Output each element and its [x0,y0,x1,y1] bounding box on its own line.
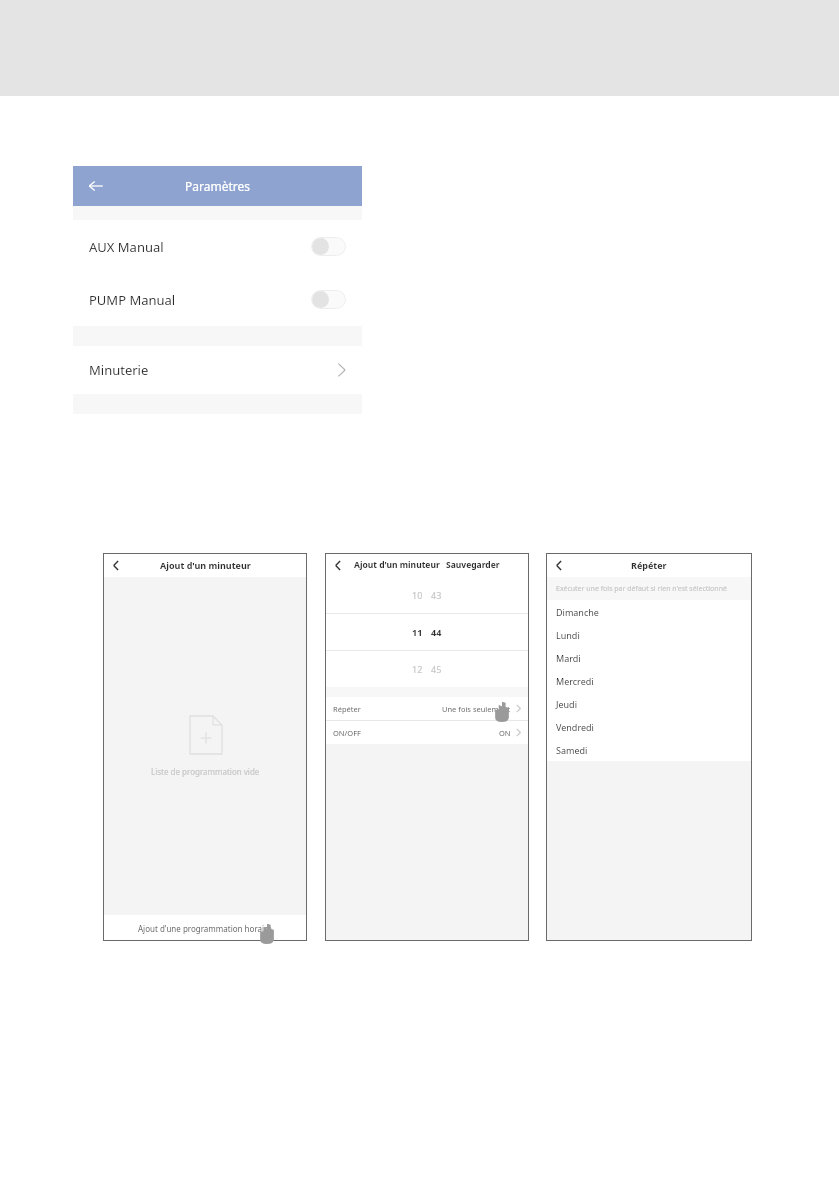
staticText: Une fois seulement [442,704,511,714]
staticText: Jeudi [556,698,577,710]
button[interactable]: Ajout d'une programmation horaire [103,915,307,941]
button[interactable]: Back [83,173,109,199]
staticText: 11 [412,626,423,638]
staticText: Paramètres [185,178,250,194]
staticText: Samedi [556,744,588,756]
staticText: Mardi [556,652,581,664]
staticText: ON/OFF [333,728,361,738]
button[interactable]: Vendredi [546,715,752,738]
staticText: 12 [412,663,423,675]
staticText: 43 [431,589,442,601]
staticText: Répéter [333,704,361,714]
staticText: Lundi [556,629,580,641]
staticText: Liste de programmation vide [151,766,260,777]
button[interactable]: ON/OFF [325,721,529,744]
button[interactable]: Minuterie [73,346,362,394]
staticText: Exécuter une fois par défaut si rien n'e… [556,584,727,594]
button[interactable]: Sauvegarder [446,559,500,571]
staticText: Ajout d'un minuteur [160,559,251,571]
staticText: Minuterie [89,361,149,379]
staticText: Mercredi [556,675,594,687]
staticText: Sauvegarder [446,559,500,571]
button[interactable]: AUX Manual [73,220,362,273]
staticText: Dimanche [556,606,599,618]
staticText: PUMP Manual [89,291,176,309]
button[interactable]: Dimanche [546,600,752,623]
staticText: Vendredi [556,721,594,733]
button[interactable]: Mercredi [546,669,752,692]
button[interactable]: PUMP Manual [311,290,346,309]
button[interactable]: Back [551,557,567,573]
button[interactable]: AUX Manual [311,237,346,256]
staticText: Répéter [631,559,667,571]
staticText: ON [499,728,511,738]
button[interactable]: Samedi [546,738,752,761]
button[interactable]: Back [330,557,346,573]
button[interactable]: PUMP Manual [73,273,362,326]
button[interactable]: Mardi [546,646,752,669]
staticText: 44 [431,626,442,638]
button[interactable]: Back [108,557,124,573]
button[interactable]: Lundi [546,623,752,646]
staticText: Ajout d'un minuteur [354,559,440,571]
staticText: 45 [431,663,442,675]
staticText: AUX Manual [89,238,164,256]
button[interactable]: Jeudi [546,692,752,715]
button[interactable]: Répéter [325,697,529,720]
staticText: 10 [412,589,423,601]
staticText: Ajout d'une programmation horaire [138,923,272,934]
